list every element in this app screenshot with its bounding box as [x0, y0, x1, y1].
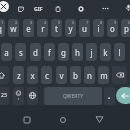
- button[interactable]: Clipboard: [52, 3, 63, 14]
- staticText: t: [55, 23, 58, 34]
- button[interactable]: u: [79, 19, 90, 37]
- staticText: g: [61, 47, 66, 58]
- staticText: 4: [44, 20, 47, 25]
- staticText: y: [68, 23, 73, 34]
- staticText: a: [4, 47, 9, 58]
- staticText: u: [82, 23, 87, 34]
- staticText: n: [87, 70, 92, 81]
- button[interactable]: m: [98, 66, 109, 84]
- button[interactable]: d: [30, 43, 41, 61]
- button[interactable]: [0, 66, 9, 84]
- staticText: GIF: [34, 5, 43, 12]
- button[interactable]: l: [114, 43, 125, 61]
- staticText: v: [59, 70, 64, 81]
- button[interactable]: Voice input: [123, 2, 130, 13]
- button[interactable]: [116, 87, 130, 104]
- button[interactable]: e: [23, 19, 34, 37]
- staticText: z: [17, 70, 21, 81]
- button[interactable]: [104, 87, 115, 105]
- button[interactable]: More options: [100, 3, 111, 14]
- button[interactable]: k: [100, 43, 111, 61]
- button[interactable]: Home: [57, 114, 68, 125]
- staticText: 8: [100, 20, 103, 25]
- button[interactable]: x: [27, 66, 38, 84]
- button[interactable]: z: [13, 66, 24, 84]
- button[interactable]: b: [70, 66, 81, 84]
- button[interactable]: w: [8, 19, 19, 37]
- staticText: 5: [58, 20, 61, 25]
- staticText: i: [97, 23, 100, 34]
- staticText: ?123: [0, 91, 8, 99]
- button[interactable]: Recents: [21, 114, 32, 125]
- staticText: q: [0, 23, 2, 34]
- button[interactable]: y: [65, 19, 76, 37]
- staticText: 3: [30, 20, 33, 25]
- button[interactable]: [27, 87, 38, 105]
- staticText: h: [75, 47, 80, 58]
- staticText: 6: [72, 20, 75, 25]
- button[interactable]: GIF: [32, 3, 44, 14]
- button[interactable]: Close: [0, 1, 9, 12]
- staticText: m: [100, 70, 108, 81]
- staticText: c: [45, 70, 49, 81]
- button[interactable]: [13, 87, 24, 105]
- staticText: s: [19, 47, 23, 58]
- button[interactable]: i: [93, 19, 104, 37]
- staticText: d: [33, 47, 38, 58]
- button[interactable]: QWERTY: [44, 87, 102, 105]
- staticText: 9: [114, 20, 117, 25]
- button[interactable]: f: [44, 43, 55, 61]
- staticText: 2: [15, 20, 18, 25]
- button[interactable]: Stickers: [15, 3, 26, 14]
- staticText: e: [26, 23, 31, 34]
- staticText: 1: [1, 20, 4, 25]
- staticText: p: [124, 23, 129, 34]
- staticText: o: [110, 23, 115, 34]
- button[interactable]: t: [51, 19, 62, 37]
- button[interactable]: Back: [94, 114, 105, 125]
- button[interactable]: n: [84, 66, 95, 84]
- staticText: 7: [86, 20, 89, 25]
- button[interactable]: j: [86, 43, 97, 61]
- staticText: 0: [128, 20, 130, 25]
- staticText: j: [90, 47, 93, 58]
- button[interactable]: q: [0, 19, 5, 37]
- staticText: b: [73, 70, 78, 81]
- staticText: r: [41, 23, 45, 34]
- button[interactable]: Settings: [75, 3, 86, 14]
- button[interactable]: o: [107, 19, 118, 37]
- button[interactable]: [112, 66, 127, 84]
- button[interactable]: c: [41, 66, 52, 84]
- staticText: l: [118, 47, 121, 58]
- button[interactable]: a: [1, 43, 12, 61]
- staticText: f: [48, 47, 51, 58]
- button[interactable]: p: [121, 19, 130, 37]
- staticText: QWERTY: [63, 93, 84, 100]
- staticText: x: [30, 70, 35, 81]
- button[interactable]: g: [58, 43, 69, 61]
- button[interactable]: s: [15, 43, 26, 61]
- button[interactable]: v: [56, 66, 67, 84]
- button[interactable]: h: [72, 43, 83, 61]
- button[interactable]: r: [37, 19, 48, 37]
- button[interactable]: ?123: [0, 87, 9, 105]
- staticText: k: [103, 47, 108, 58]
- staticText: w: [10, 23, 17, 34]
